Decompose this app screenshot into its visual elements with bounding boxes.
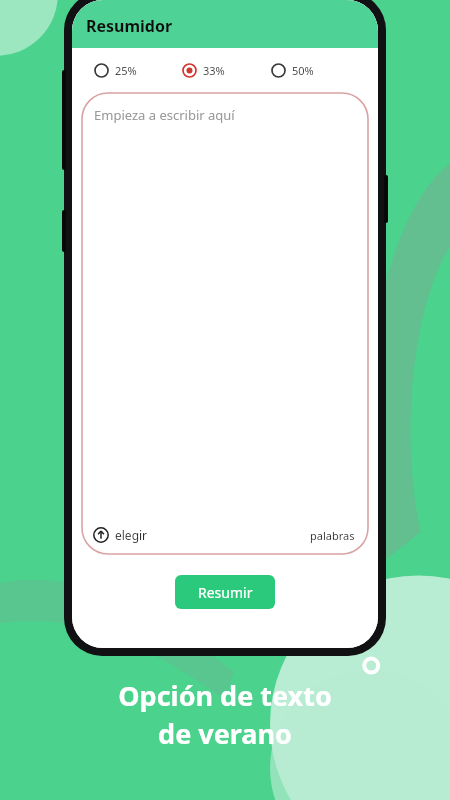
button[interactable]: Empieza a escribir aquí	[81, 92, 369, 555]
staticText: Opción de texto	[118, 677, 332, 714]
staticText: Empieza a escribir aquí	[94, 106, 235, 124]
button[interactable]: 50%	[271, 63, 360, 78]
staticText: 25%	[115, 63, 137, 78]
staticText: 33%	[203, 63, 225, 78]
staticText: 50%	[292, 63, 314, 78]
button[interactable]: Resumir	[175, 575, 275, 609]
button[interactable]: 33%	[182, 63, 271, 78]
staticText: Resumidor	[86, 15, 173, 37]
staticText: Resumir	[198, 583, 253, 602]
button[interactable]: Resumidor	[72, 0, 378, 48]
staticText: de verano	[158, 715, 292, 752]
button[interactable]: 25%	[94, 63, 182, 78]
staticText: elegir	[115, 527, 148, 543]
button[interactable]: elegir	[93, 527, 148, 543]
button[interactable]: palabras	[310, 528, 355, 543]
